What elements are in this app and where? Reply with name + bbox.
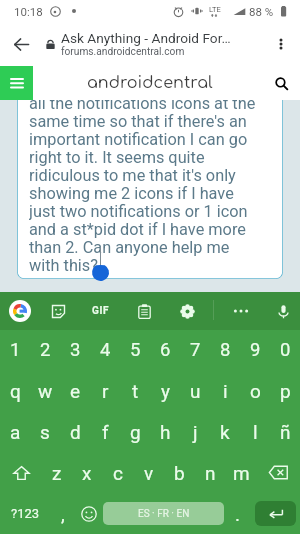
staticText: with this? bbox=[29, 256, 98, 274]
staticText: n bbox=[205, 462, 216, 484]
staticText: j bbox=[193, 421, 198, 443]
button[interactable]: Settings bbox=[172, 296, 202, 326]
staticText: b bbox=[174, 462, 185, 484]
staticText: 0 bbox=[280, 339, 291, 361]
button[interactable]: GIF bbox=[86, 296, 116, 326]
staticText: than 2. Can anyone help me bbox=[29, 238, 230, 256]
button[interactable]: r bbox=[90, 370, 120, 411]
button[interactable]: z bbox=[42, 452, 72, 493]
staticText: s bbox=[40, 421, 50, 443]
button[interactable]: 4 bbox=[90, 330, 120, 370]
staticText: d bbox=[70, 421, 81, 443]
staticText: right to it. It seems quite bbox=[29, 148, 205, 166]
button[interactable]: j bbox=[180, 411, 210, 452]
staticText: y bbox=[161, 380, 170, 402]
button[interactable]: x bbox=[72, 452, 102, 493]
button[interactable]: 9 bbox=[240, 330, 270, 370]
staticText: z bbox=[52, 462, 62, 484]
staticText: m bbox=[233, 462, 250, 484]
staticText: 1 bbox=[10, 339, 21, 361]
staticText: and a st*pid dot if I have more bbox=[29, 220, 246, 238]
button[interactable]: 6 bbox=[150, 330, 180, 370]
button[interactable]: b bbox=[164, 452, 195, 493]
button[interactable]: More bbox=[226, 296, 256, 326]
button[interactable]: p bbox=[270, 370, 300, 411]
button[interactable]: i bbox=[210, 370, 240, 411]
button[interactable]: Backspace bbox=[257, 452, 300, 493]
button[interactable]: Google bbox=[5, 296, 35, 326]
staticText: a bbox=[10, 421, 21, 443]
staticText: w bbox=[38, 380, 53, 402]
button[interactable]: Voice input bbox=[268, 296, 298, 326]
button[interactable]: Clipboard bbox=[129, 296, 159, 326]
button[interactable]: g bbox=[120, 411, 150, 452]
button[interactable]: t bbox=[120, 370, 150, 411]
staticText: 88 % bbox=[249, 5, 274, 18]
button[interactable]: Back bbox=[4, 27, 38, 61]
staticText: . bbox=[235, 503, 241, 525]
staticText: ?123 bbox=[11, 506, 40, 521]
staticText: 8 bbox=[220, 339, 231, 361]
button[interactable]: s bbox=[30, 411, 60, 452]
button[interactable]: ñ bbox=[270, 411, 300, 452]
button[interactable]: l bbox=[240, 411, 270, 452]
button[interactable]: v bbox=[133, 452, 164, 493]
staticText: v bbox=[144, 462, 154, 484]
button[interactable]: o bbox=[240, 370, 270, 411]
button[interactable]: Menu bbox=[0, 66, 33, 100]
button[interactable]: Enter bbox=[255, 501, 296, 526]
button[interactable]: n bbox=[195, 452, 226, 493]
staticText: o bbox=[250, 380, 261, 402]
button[interactable]: Emoji bbox=[75, 493, 103, 534]
button[interactable]: 8 bbox=[210, 330, 240, 370]
staticText: forums.androidcentral.com bbox=[61, 46, 185, 58]
staticText: 7 bbox=[190, 339, 201, 361]
staticText: i bbox=[223, 380, 228, 402]
button[interactable] bbox=[17, 100, 283, 279]
button[interactable]: h bbox=[150, 411, 180, 452]
staticText: r bbox=[102, 380, 109, 402]
button[interactable]: 7 bbox=[180, 330, 210, 370]
staticText: f bbox=[102, 421, 109, 443]
button[interactable]: ?123 bbox=[0, 493, 51, 534]
button[interactable]: 3 bbox=[60, 330, 90, 370]
staticText: , bbox=[61, 503, 65, 525]
staticText: ridiculous to me that it's only bbox=[29, 166, 236, 184]
button[interactable]: f bbox=[90, 411, 120, 452]
staticText: showing me 2 icons if I have bbox=[29, 184, 234, 202]
staticText: 10:18 bbox=[14, 5, 43, 18]
button[interactable]: . bbox=[224, 493, 251, 534]
button[interactable]: k bbox=[210, 411, 240, 452]
button[interactable]: 0 bbox=[270, 330, 300, 370]
staticText: 2 bbox=[40, 339, 51, 361]
button[interactable]: ES · FR · EN bbox=[103, 502, 224, 525]
button[interactable]: 2 bbox=[30, 330, 60, 370]
button[interactable]: 5 bbox=[120, 330, 150, 370]
button[interactable]: q bbox=[0, 370, 30, 411]
staticText: ES · FR · EN bbox=[138, 508, 190, 520]
staticText: 9 bbox=[250, 339, 261, 361]
staticText: c bbox=[113, 462, 123, 484]
staticText: p bbox=[280, 380, 291, 402]
button[interactable]: Search bbox=[268, 70, 294, 96]
staticText: 5 bbox=[130, 339, 141, 361]
button[interactable]: a bbox=[0, 411, 30, 452]
button[interactable]: Shift bbox=[0, 452, 42, 493]
button[interactable]: y bbox=[150, 370, 180, 411]
staticText: Ask Anything - Android For… bbox=[61, 30, 231, 46]
button[interactable]: c bbox=[102, 452, 133, 493]
staticText: u bbox=[190, 380, 201, 402]
button[interactable]: u bbox=[180, 370, 210, 411]
staticText: 6 bbox=[160, 339, 171, 361]
button[interactable]: m bbox=[226, 452, 257, 493]
button[interactable]: , bbox=[51, 493, 75, 534]
staticText: GIF bbox=[92, 305, 110, 317]
staticText: ñ bbox=[280, 421, 291, 443]
button[interactable]: e bbox=[60, 370, 90, 411]
staticText: just two notifications or 1 icon bbox=[29, 202, 248, 220]
button[interactable]: More options bbox=[265, 28, 297, 60]
button[interactable]: Stickers bbox=[43, 296, 73, 326]
button[interactable]: 1 bbox=[0, 330, 30, 370]
button[interactable]: w bbox=[30, 370, 60, 411]
button[interactable]: d bbox=[60, 411, 90, 452]
